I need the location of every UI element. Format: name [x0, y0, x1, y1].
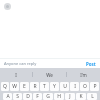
- button[interactable]: F: [33, 93, 42, 100]
- button[interactable]: U: [60, 82, 69, 91]
- staticText: We: [46, 72, 53, 78]
- staticText: R: [33, 83, 37, 90]
- staticText: Post: [86, 61, 96, 67]
- staticText: J: [69, 93, 71, 100]
- staticText: Anyone can reply: [4, 61, 37, 66]
- staticText: E: [23, 83, 26, 90]
- staticText: T: [43, 83, 46, 90]
- button[interactable]: S: [13, 93, 22, 100]
- staticText: A: [6, 93, 10, 100]
- button[interactable]: Profile picture: [4, 3, 11, 10]
- button[interactable]: Y: [50, 82, 59, 91]
- button[interactable]: G: [43, 93, 53, 100]
- staticText: I: [15, 72, 17, 78]
- staticText: Q: [3, 83, 7, 90]
- button[interactable]: E: [20, 82, 29, 91]
- button[interactable]: D: [23, 93, 32, 100]
- staticText: P: [93, 83, 97, 90]
- button[interactable]: W: [10, 82, 19, 91]
- button[interactable]: L: [87, 93, 97, 100]
- staticText: F: [36, 93, 39, 100]
- button[interactable]: I: [70, 82, 79, 91]
- staticText: D: [26, 93, 30, 100]
- button[interactable]: R: [30, 82, 39, 91]
- button[interactable]: I'm: [67, 68, 100, 81]
- button[interactable]: A: [3, 93, 12, 100]
- button[interactable]: P: [90, 82, 99, 91]
- staticText: I'm: [80, 72, 87, 78]
- button[interactable]: Anyone can reply: [3, 60, 38, 67]
- staticText: S: [16, 93, 19, 100]
- staticText: I: [74, 83, 76, 90]
- button[interactable]: O: [80, 82, 89, 91]
- staticText: U: [63, 83, 67, 90]
- staticText: Y: [53, 83, 56, 90]
- staticText: W: [12, 83, 17, 90]
- button[interactable]: H: [54, 93, 64, 100]
- button[interactable]: T: [40, 82, 49, 91]
- staticText: L: [91, 93, 94, 100]
- button[interactable]: Q: [1, 82, 9, 91]
- staticText: H: [57, 93, 61, 100]
- staticText: K: [79, 93, 83, 100]
- staticText: G: [46, 93, 50, 100]
- button[interactable]: J: [65, 93, 75, 100]
- button[interactable]: We: [33, 68, 66, 81]
- button[interactable]: Post: [85, 60, 97, 68]
- staticText: O: [83, 83, 87, 90]
- button[interactable]: K: [76, 93, 86, 100]
- button[interactable]: I: [0, 68, 32, 81]
